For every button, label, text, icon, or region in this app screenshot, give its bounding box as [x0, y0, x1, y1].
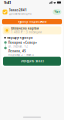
staticText: Доставка сегодня: [9, 12, 32, 15]
staticText: подъезд 2 · этаж 4: [8, 53, 34, 57]
button[interactable]: Курьер подъезжает: [2, 19, 62, 24]
staticText: Маршрут курьера: [7, 36, 33, 39]
staticText: Пекарня «Север»: [8, 41, 37, 44]
staticText: 1 480 ₽ · 3 позиции: [11, 30, 42, 34]
button[interactable]: Чат: [53, 9, 61, 15]
staticText: Ленина, 45: [8, 49, 26, 53]
staticText: Оплачено картой: [11, 27, 39, 30]
staticText: Чат: [54, 10, 59, 14]
button[interactable]: Отследить заказ: [3, 57, 61, 66]
staticText: Курьер подъезжает: [17, 20, 46, 23]
staticText: ул. Лесная, 12: [8, 45, 28, 48]
staticText: 9:41: [4, 0, 11, 5]
staticText: Заказ 2841: [9, 8, 27, 12]
staticText: Отследить заказ: [20, 59, 43, 63]
